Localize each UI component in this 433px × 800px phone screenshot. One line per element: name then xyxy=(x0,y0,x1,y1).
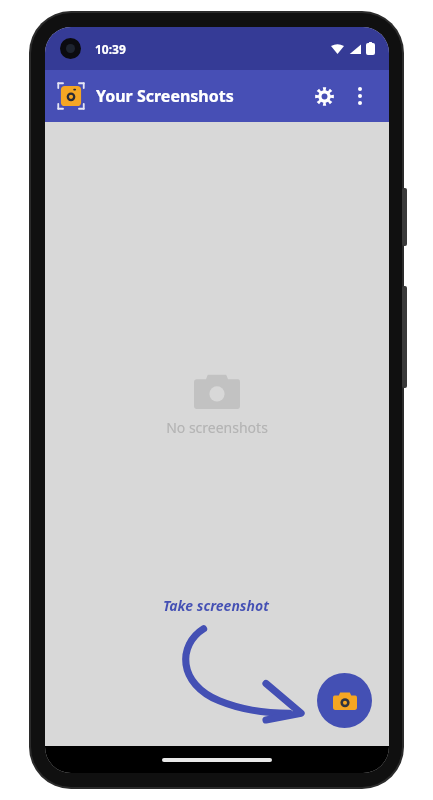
staticText: 10:39 xyxy=(95,41,126,57)
button[interactable]: Settings xyxy=(305,77,343,115)
button[interactable]: More options xyxy=(343,79,377,113)
staticText: Take screenshot xyxy=(163,596,269,615)
staticText: Your Screenshots xyxy=(96,85,234,107)
staticText: No screenshots xyxy=(166,418,268,437)
button[interactable]: Take screenshot xyxy=(317,673,372,728)
